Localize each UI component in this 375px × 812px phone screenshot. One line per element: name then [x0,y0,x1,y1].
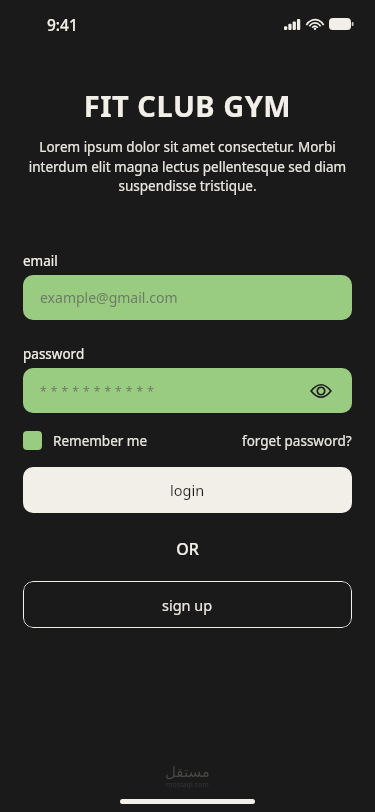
button[interactable]: example@gmail.com [23,275,352,320]
staticText: email [23,252,58,270]
staticText: sign up [162,595,213,615]
staticText: 9:41 [47,14,78,35]
staticText: login [170,480,205,500]
staticText: Remember me [53,432,148,450]
staticText: password [23,345,85,363]
button[interactable]: * * * * * * * * * * * [23,368,352,413]
staticText: forget password? [242,432,352,450]
staticText: Lorem ipsum dolor sit amet consectetur. … [23,138,352,195]
staticText: * * * * * * * * * * * [40,383,155,399]
button[interactable]: login [23,467,352,513]
button[interactable]: Show password [307,377,335,405]
button[interactable]: Remember me [23,431,148,450]
button[interactable]: sign up [23,581,352,628]
staticText: example@gmail.com [40,288,178,307]
staticText: OR [23,538,352,560]
staticText: FIT CLUB GYM [23,86,352,125]
button[interactable]: forget password? [242,432,352,450]
staticText: مستقل [165,763,210,780]
staticText: mostaql.com [166,780,209,790]
